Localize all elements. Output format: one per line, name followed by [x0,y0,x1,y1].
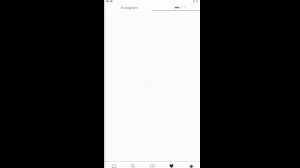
button[interactable]: Home [104,163,123,168]
button[interactable]: Profile [181,163,200,168]
button[interactable]: Direct messages [174,6,180,9]
button[interactable]: Activity [162,163,181,168]
button[interactable]: Search [123,163,142,168]
staticText: Instagram [121,5,138,10]
button[interactable]: New post [143,163,162,168]
